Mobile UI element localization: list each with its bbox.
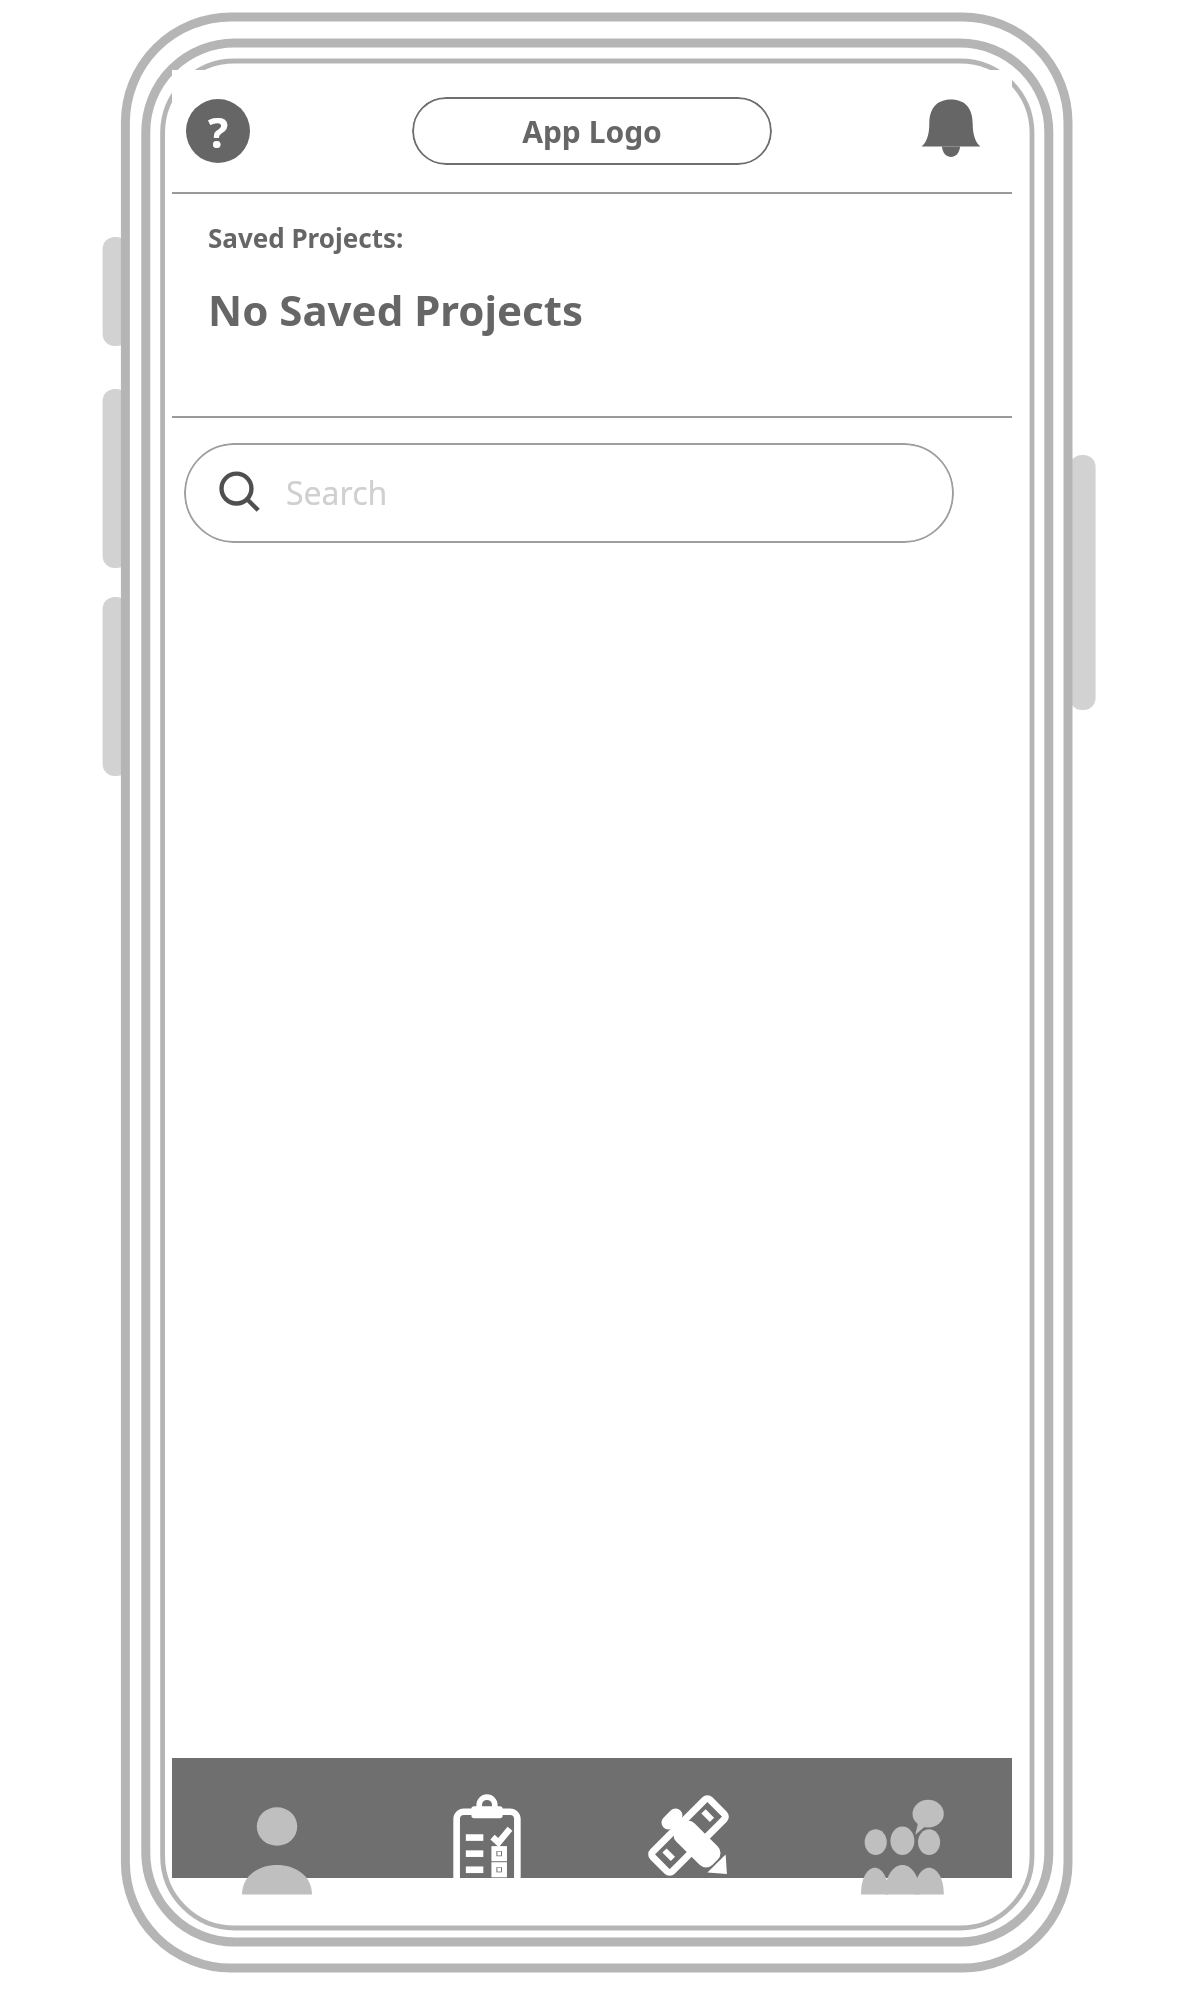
- staticText: ?: [208, 103, 229, 160]
- button[interactable]: Design tools: [592, 1758, 802, 1878]
- button[interactable]: Community: [802, 1758, 1012, 1878]
- button[interactable]: Profile: [172, 1758, 382, 1878]
- button[interactable]: Tasks: [382, 1758, 592, 1878]
- staticText: Search: [286, 471, 388, 515]
- button[interactable]: Notifications: [912, 92, 990, 170]
- staticText: No Saved Projects: [208, 281, 583, 338]
- staticText: App Logo: [522, 111, 662, 152]
- button[interactable]: App Logo: [412, 97, 772, 165]
- button[interactable]: Search: [184, 443, 954, 543]
- button[interactable]: Help: [186, 99, 250, 163]
- staticText: Saved Projects:: [208, 220, 404, 255]
